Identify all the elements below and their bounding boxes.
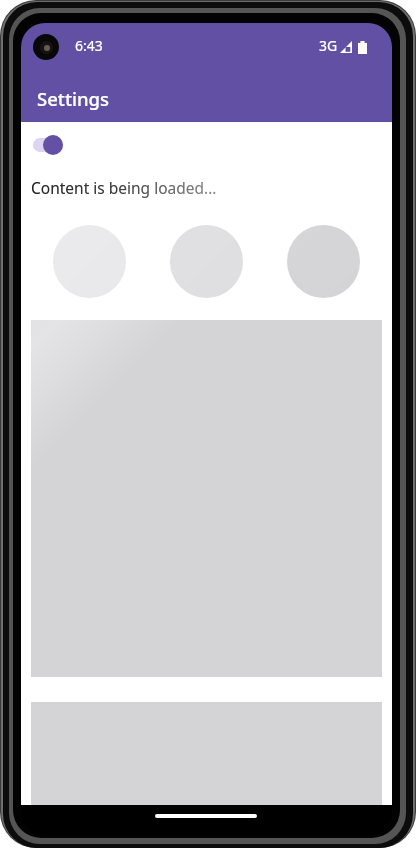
staticText: 6:43 <box>75 36 103 55</box>
staticText: 3G <box>319 36 338 55</box>
button[interactable]: Toggle setting <box>27 128 75 162</box>
staticText: Settings <box>37 86 110 111</box>
staticText: Content is being loaded... <box>31 177 217 198</box>
